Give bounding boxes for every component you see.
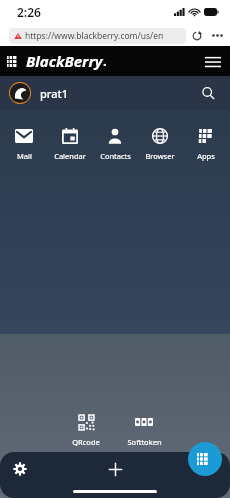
staticText: Mail (17, 151, 32, 161)
staticText: https://www.blackberry.com/us/en (25, 30, 164, 42)
staticText: . (103, 52, 107, 70)
button[interactable]: Calendar (49, 124, 91, 163)
button[interactable]: Settings (5, 454, 35, 484)
button[interactable]: Apps (185, 124, 227, 163)
staticText: Softtoken (127, 437, 162, 447)
button[interactable]: QRcode (65, 410, 107, 449)
staticText: prat1 (40, 86, 69, 101)
staticText: Browser (145, 151, 175, 161)
button[interactable]: Browser (139, 124, 181, 163)
staticText: QRcode (72, 437, 100, 447)
button[interactable]: BlackBerry Hub (188, 442, 222, 476)
button[interactable]: Menu (196, 46, 230, 76)
staticText: Contacts (100, 151, 131, 161)
button[interactable]: Softtoken (123, 410, 165, 449)
staticText: Apps (197, 151, 215, 161)
button[interactable]: Add (100, 454, 130, 484)
staticText: BlackBerry (26, 51, 103, 71)
button[interactable]: Contacts (94, 124, 136, 163)
button[interactable]: prat1 (0, 76, 230, 110)
staticText: 2:26 (17, 4, 41, 20)
button[interactable]: https://www.blackberry.com/us/en (9, 28, 186, 44)
button[interactable]: Search (195, 80, 221, 106)
button[interactable]: Mail (3, 124, 45, 163)
staticText: Calendar (54, 151, 86, 161)
button[interactable]: Reload page (186, 25, 207, 46)
button[interactable]: More options (207, 25, 228, 46)
